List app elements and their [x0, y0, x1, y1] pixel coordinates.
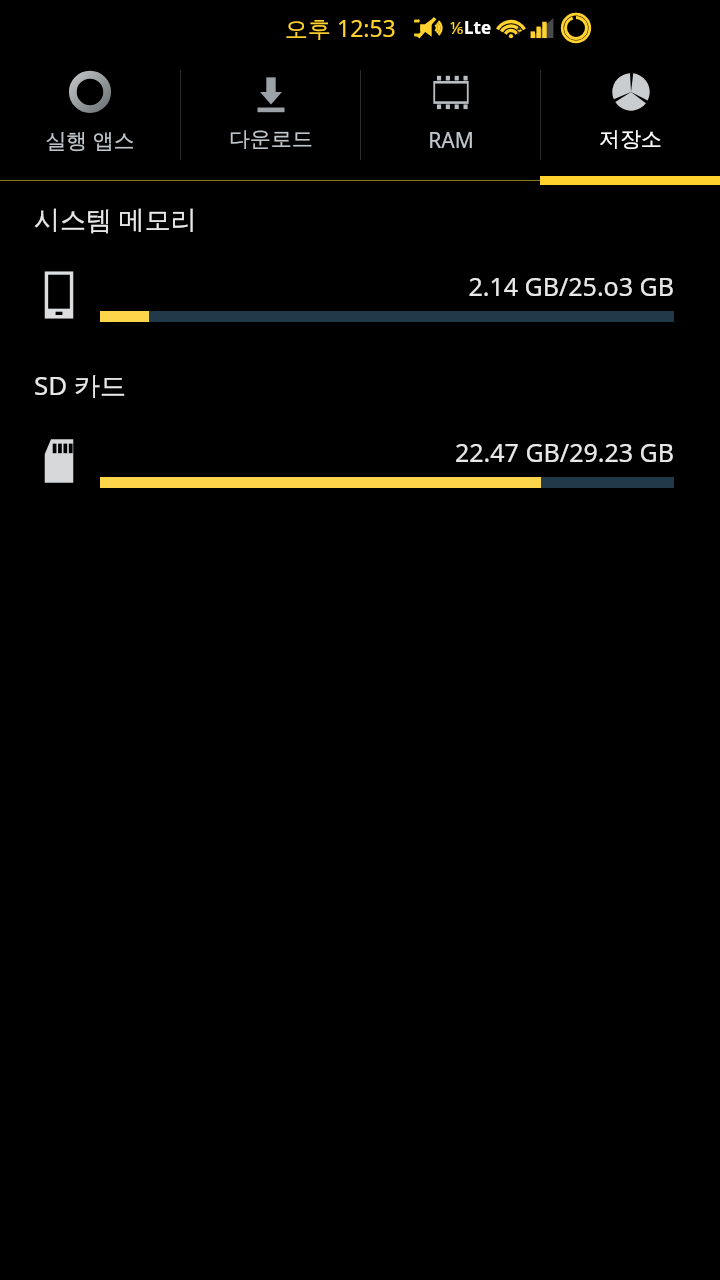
- staticText: 다운로드: [229, 126, 313, 152]
- staticText: RAM: [428, 126, 474, 155]
- other: SD card: [36, 430, 82, 492]
- staticText: ⅙: [450, 16, 464, 39]
- staticText: 실행 앱스: [45, 126, 135, 155]
- staticText: Lte: [464, 16, 492, 39]
- button[interactable]: 실행 앱스: [0, 54, 180, 176]
- staticText: 2.14 GB/25.o3 GB: [100, 269, 674, 303]
- staticText: 시스템 메모리: [34, 201, 197, 237]
- staticText: 22.47 GB/29.23 GB: [100, 435, 674, 469]
- button[interactable]: RAM: [361, 54, 540, 176]
- button[interactable]: 저장소: [541, 54, 720, 176]
- button[interactable]: Internal storage: [0, 259, 720, 331]
- staticText: SD 카드: [34, 367, 127, 403]
- staticText: 저장소: [599, 126, 662, 152]
- button[interactable]: SD card: [0, 425, 720, 497]
- other: Internal storage: [36, 264, 82, 326]
- staticText: 오후 12:53: [285, 12, 396, 43]
- button[interactable]: 다운로드: [181, 54, 360, 176]
